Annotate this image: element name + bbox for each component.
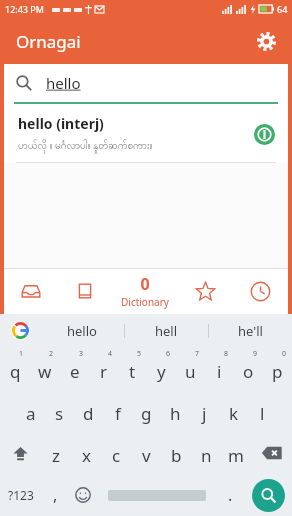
staticText: v (142, 444, 151, 467)
staticText: s (55, 402, 64, 425)
staticText: hello (46, 73, 81, 93)
button[interactable]: . (216, 474, 244, 516)
button[interactable]: x (71, 432, 101, 474)
button[interactable]: 0 (112, 268, 178, 314)
staticText: c (112, 444, 121, 467)
button[interactable]: Play pronunciation (250, 120, 278, 148)
button[interactable]: Backspace (251, 432, 292, 474)
button[interactable]: Shift (0, 432, 41, 474)
button[interactable]: 0 (263, 347, 292, 390)
button[interactable]: d (74, 390, 103, 432)
staticText: 1 (19, 349, 24, 359)
staticText: 8 (224, 349, 229, 359)
staticText: w (38, 360, 52, 383)
staticText: 12:43 PM (5, 3, 44, 15)
staticText: n (201, 444, 212, 467)
staticText: Dictionary (121, 295, 169, 309)
staticText: h (170, 402, 181, 425)
button[interactable]: 2 (30, 347, 60, 390)
button[interactable]: , (41, 474, 69, 516)
button[interactable]: c (101, 432, 131, 474)
staticText: y (157, 360, 166, 383)
staticText: , (53, 484, 58, 506)
staticText: j (202, 402, 207, 425)
button[interactable]: z (41, 432, 71, 474)
staticText: . (228, 484, 233, 506)
button[interactable]: ?123 (0, 474, 41, 516)
button[interactable]: k (219, 390, 248, 432)
staticText: ဟယ်လို ။ မင်္ဂလာပါ။ နှုတ်ဆက်စကား။ (18, 138, 153, 154)
staticText: g (141, 402, 152, 425)
button[interactable]: Book (58, 268, 112, 314)
button[interactable]: n (191, 432, 221, 474)
button[interactable]: a (16, 390, 45, 432)
button[interactable]: m (221, 432, 251, 474)
staticText: z (52, 444, 60, 467)
button[interactable]: hello (interj) (4, 104, 288, 163)
staticText: l (260, 402, 265, 425)
button[interactable]: 5 (118, 347, 147, 390)
staticText: 9 (253, 349, 258, 359)
button[interactable]: History (233, 268, 288, 314)
staticText: t (129, 360, 136, 383)
staticText: 4 (108, 349, 113, 359)
staticText: i (217, 360, 222, 383)
staticText: hello (67, 322, 97, 340)
staticText: hello (interj) (18, 114, 104, 133)
button[interactable]: 7 (176, 347, 205, 390)
button[interactable]: Search (244, 474, 292, 516)
button[interactable]: Favorites (178, 268, 233, 314)
button[interactable]: 8 (205, 347, 234, 390)
staticText: b (171, 444, 182, 467)
staticText: p (272, 360, 283, 383)
staticText: 6 (166, 349, 171, 359)
button[interactable]: b (161, 432, 191, 474)
staticText: d (83, 402, 94, 425)
staticText: x (82, 444, 91, 467)
button[interactable]: he'll (209, 314, 292, 347)
button[interactable]: 3 (60, 347, 89, 390)
staticText: hell (155, 322, 178, 340)
staticText: 3 (79, 349, 84, 359)
staticText: a (26, 402, 36, 425)
staticText: f (115, 402, 121, 425)
button[interactable]: g (132, 390, 161, 432)
button[interactable]: Search (4, 64, 288, 102)
button[interactable]: h (161, 390, 190, 432)
button[interactable]: 1 (0, 347, 30, 390)
button[interactable]: Space (97, 485, 216, 505)
staticText: ?123 (8, 487, 34, 503)
staticText: u (185, 360, 196, 383)
staticText: m (228, 444, 244, 467)
button[interactable]: v (131, 432, 161, 474)
staticText: he'll (238, 322, 263, 340)
staticText: 2 (49, 349, 54, 359)
button[interactable]: hell (125, 314, 208, 347)
button[interactable]: f (103, 390, 132, 432)
staticText: 0 (140, 273, 150, 295)
button[interactable]: 9 (234, 347, 263, 390)
button[interactable]: l (248, 390, 277, 432)
staticText: 0 (282, 349, 287, 359)
staticText: r (100, 360, 108, 383)
button[interactable]: Inbox (4, 268, 58, 314)
button[interactable]: hello (40, 314, 124, 347)
staticText: 64 (277, 3, 288, 15)
button[interactable]: Google (0, 314, 40, 347)
staticText: k (229, 402, 239, 425)
other: Search (16, 75, 32, 91)
button[interactable]: 6 (147, 347, 176, 390)
button[interactable]: Settings (248, 23, 284, 59)
staticText: 5 (137, 349, 142, 359)
button[interactable]: Emoji (69, 474, 97, 516)
button[interactable]: s (45, 390, 74, 432)
button[interactable]: j (190, 390, 219, 432)
staticText: 7 (195, 349, 200, 359)
button[interactable]: 4 (89, 347, 118, 390)
staticText: q (10, 360, 21, 383)
staticText: o (243, 360, 254, 383)
staticText: Ornagai (16, 30, 81, 53)
staticText: e (70, 360, 80, 383)
